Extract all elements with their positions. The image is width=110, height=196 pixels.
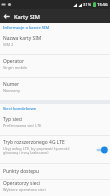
- staticText: Numer: [3, 81, 20, 88]
- button[interactable]: Tryb rozszerzonego 4G LTE: [0, 136, 110, 163]
- staticText: Sieci komórkowe: [3, 106, 37, 112]
- staticText: Informacje o karcie SIM: [3, 25, 50, 31]
- button[interactable]: Operatorzy sieci: [0, 180, 110, 196]
- staticText: Operatorzy sieci: [3, 180, 41, 187]
- staticText: Punkty dostępu: [3, 168, 40, 175]
- staticText: Typ sieci: [3, 116, 23, 123]
- staticText: Karty SIM: [14, 13, 40, 21]
- button[interactable]: Punkty dostępu: [0, 164, 110, 179]
- staticText: Preferowana sieć LTE: [3, 123, 42, 128]
- staticText: Virgin mobile: [3, 65, 28, 70]
- button[interactable]: Operator: [0, 55, 110, 77]
- staticText: 15:56: [97, 2, 108, 8]
- staticText: Nieznany: [3, 88, 20, 93]
- staticText: SIM 2: [3, 42, 14, 47]
- button[interactable]: Tryb rozszerzonego 4G LTE: [95, 145, 108, 155]
- staticText: Operator: [3, 58, 24, 65]
- button[interactable]: Wstecz: [0, 9, 13, 23]
- button[interactable]: Nazwa karty SIM: [0, 32, 110, 54]
- staticText: 31%: [83, 2, 92, 8]
- staticText: Wybierz operatora sieci: [3, 187, 46, 192]
- staticText: Użyj usług LTE, by poprawić łączność gło…: [3, 146, 74, 155]
- staticText: Tryb rozszerzonego 4G LTE: [3, 139, 65, 146]
- button[interactable]: Numer: [0, 78, 110, 100]
- staticText: Nazwa karty SIM: [3, 35, 42, 42]
- button[interactable]: Typ sieci: [0, 113, 110, 135]
